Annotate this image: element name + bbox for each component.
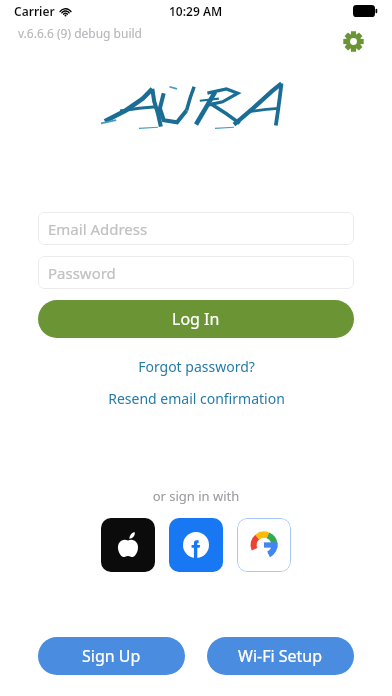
button[interactable]: Forgot password?	[130, 354, 263, 379]
staticText: Carrier	[14, 3, 55, 19]
staticText: Password	[48, 263, 116, 283]
staticText: Sign Up	[82, 645, 141, 667]
staticText: Forgot password?	[138, 357, 255, 376]
button[interactable]: Sign in with Facebook	[169, 518, 223, 572]
staticText: or sign in with	[0, 487, 392, 505]
button[interactable]: Sign in with Apple	[101, 518, 155, 572]
button[interactable]: Email Address	[38, 212, 354, 245]
button[interactable]: Log In	[38, 300, 354, 338]
staticText: 10:29 AM	[169, 3, 223, 19]
staticText: Wi-Fi Setup	[238, 645, 323, 667]
button[interactable]: Resend email confirmation	[100, 386, 293, 411]
staticText: Log In	[172, 308, 220, 330]
button[interactable]: Password	[38, 256, 354, 289]
staticText: Resend email confirmation	[108, 389, 285, 408]
staticText: Email Address	[48, 219, 148, 239]
button[interactable]: Wi-Fi Setup	[207, 637, 354, 675]
button[interactable]: Sign in with Google	[237, 518, 291, 572]
button[interactable]: Sign Up	[38, 637, 185, 675]
staticText: v.6.6.6 (9) debug build	[18, 25, 142, 41]
button[interactable]: Settings	[340, 28, 366, 54]
